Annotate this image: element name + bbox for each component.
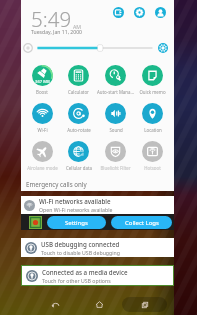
staticText: Wi-Fi (37, 127, 48, 132)
staticText: Settings (65, 219, 88, 227)
staticText: Hotspot (144, 165, 161, 170)
button[interactable]: USB debugging connected (21, 238, 174, 257)
button[interactable]: Auto brightness (158, 43, 168, 53)
staticText: Emergency calls only (26, 180, 87, 188)
staticText: Connected as a media device (42, 268, 128, 276)
button[interactable]: Auto-rotate (60, 94, 97, 132)
button[interactable]: App icon (29, 216, 42, 229)
staticText: Location (144, 127, 162, 132)
button[interactable]: Airplane mode (24, 132, 60, 170)
staticText: Quick memo (139, 89, 166, 94)
button[interactable]: Settings (47, 216, 106, 229)
button[interactable]: Settings (134, 7, 145, 18)
button[interactable]: Location (134, 94, 171, 132)
button[interactable]: Auto-start Mana... (97, 56, 134, 94)
button[interactable]: Cellular data (60, 132, 97, 170)
staticText: AM (73, 23, 82, 30)
button[interactable]: Sound (97, 94, 134, 132)
staticText: USB debugging connected (41, 240, 120, 248)
staticText: Calculator (68, 89, 89, 94)
staticText: Collect Logs (125, 219, 159, 227)
staticText: Auto-start Mana... (97, 89, 134, 94)
staticText: Wi-Fi networks available (39, 197, 111, 205)
staticText: Open Wi-Fi networks available (39, 206, 113, 213)
button[interactable]: Wi-Fi networks available (21, 196, 174, 214)
staticText: Touch for other USB options (42, 277, 111, 284)
button[interactable]: Home (91, 296, 108, 313)
staticText: 367 MB (35, 79, 50, 85)
button[interactable]: Connected as a media device (22, 266, 173, 285)
staticText: Bluelight Filter (100, 165, 131, 170)
button[interactable]: User profile (155, 7, 166, 18)
button[interactable]: Screenshot (113, 7, 124, 18)
button[interactable]: Quick memo (134, 56, 171, 94)
button[interactable]: Wi-Fi (24, 94, 60, 132)
staticText: Auto-rotate (67, 127, 91, 132)
button[interactable]: Collect Logs (111, 216, 172, 229)
staticText: 5:49 (31, 5, 72, 33)
button[interactable]: Hotspot (134, 132, 171, 170)
button[interactable]: Back (47, 297, 64, 314)
staticText: Boost (36, 89, 48, 94)
button[interactable]: Recent apps (122, 297, 167, 312)
staticText: Sound (109, 127, 123, 132)
button[interactable]: Calculator (60, 56, 97, 94)
staticText: Tuesday, Jan 11, 2000 (31, 29, 83, 36)
staticText: Cellular data (66, 165, 92, 170)
button[interactable]: 367 MB (24, 56, 60, 94)
button[interactable]: Bluelight Filter (97, 132, 134, 170)
staticText: Touch to disable USB debugging (41, 249, 120, 256)
staticText: Airplane mode (27, 165, 58, 170)
